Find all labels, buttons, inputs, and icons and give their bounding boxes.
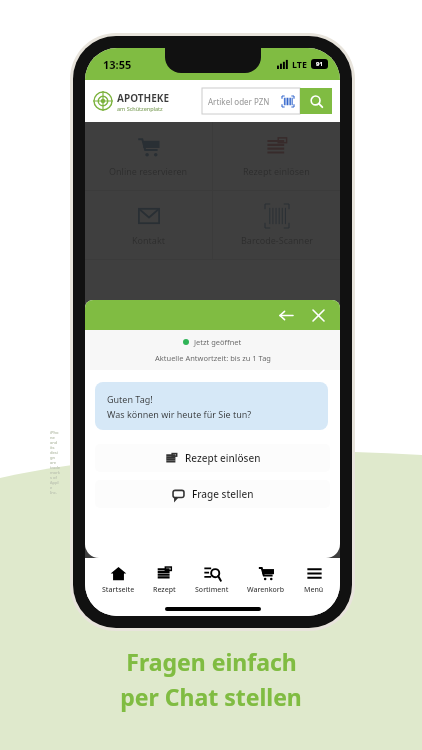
staticText: Online reservieren	[109, 165, 188, 177]
staticText: 91	[316, 60, 323, 68]
button[interactable]: Sortiment	[193, 565, 231, 595]
staticText: 13:55	[103, 57, 132, 72]
staticText: Startseite	[102, 585, 135, 595]
button[interactable]: Rezept einlösen	[213, 122, 340, 190]
staticText: Fragen einfach	[126, 646, 297, 677]
staticText: Was können wir heute für Sie tun?	[107, 408, 252, 420]
staticText: Guten Tag!	[107, 393, 153, 405]
button[interactable]: Schließen	[306, 303, 330, 327]
staticText: Artikel oder PZN	[208, 96, 270, 107]
staticText: Barcode-Scanner	[241, 234, 313, 246]
staticText: Rezept einlösen	[243, 165, 310, 177]
button[interactable]: Startseite	[100, 565, 137, 595]
staticText: am Schützenplatz	[117, 105, 163, 112]
button[interactable]: Frage stellen	[95, 480, 330, 508]
staticText: iPhone and its design are trademarks of …	[50, 430, 60, 495]
staticText: Kontakt	[132, 234, 165, 246]
button[interactable]: Suchen	[300, 88, 332, 114]
staticText: Warenkorb	[247, 585, 285, 595]
button[interactable]: Zurück	[274, 303, 298, 327]
button[interactable]: Rezept einlösen	[95, 444, 330, 472]
staticText: Aktuelle Antwortzeit: bis zu 1 Tag	[155, 353, 271, 363]
button[interactable]: Kontakt	[85, 191, 212, 259]
button[interactable]: Menü	[302, 565, 326, 595]
staticText: Jetzt geöffnet	[194, 337, 242, 347]
button[interactable]: Warenkorb	[245, 565, 287, 595]
staticText: Menü	[304, 585, 324, 595]
staticText: APOTHEKE	[117, 91, 169, 105]
button[interactable]: Rezept	[151, 565, 178, 595]
staticText: Rezept	[153, 585, 176, 595]
staticText: Sortiment	[195, 585, 229, 595]
button[interactable]: Online reservieren	[85, 122, 212, 190]
staticText: Frage stellen	[192, 487, 254, 501]
staticText: LTE	[292, 58, 308, 70]
staticText: per Chat stellen	[120, 681, 302, 712]
staticText: Rezept einlösen	[185, 451, 261, 465]
